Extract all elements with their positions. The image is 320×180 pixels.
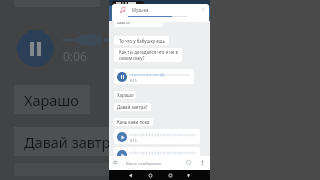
other: Play voice message xyxy=(117,150,127,160)
staticText: Музыка xyxy=(132,7,149,13)
button[interactable]: Как ты догадался что я не в своем свку? xyxy=(114,48,182,62)
staticText: Кань кави пока xyxy=(117,119,150,125)
button[interactable]: Emoji xyxy=(186,160,191,165)
button[interactable]: Кань кави пока xyxy=(114,118,153,126)
staticText: Как ты догадался что я не в своем свку? xyxy=(119,49,178,61)
button[interactable]: Pause voice message xyxy=(114,69,194,84)
button[interactable]: Музыка xyxy=(112,4,209,22)
staticText: Харашо xyxy=(117,92,134,98)
button[interactable]: То что у бабушку ешь xyxy=(114,36,169,45)
staticText: 0:06 xyxy=(63,48,87,64)
button[interactable]: Play voice message xyxy=(114,147,200,162)
staticText: 0:15 xyxy=(130,78,137,83)
staticText: свого? xyxy=(117,19,131,25)
button[interactable]: Recents xyxy=(168,173,173,178)
other: Pause voice message xyxy=(117,72,127,82)
button[interactable]: Attach xyxy=(113,160,118,165)
button[interactable]: Back xyxy=(128,173,133,178)
staticText: Давай завтра xyxy=(24,132,109,152)
button[interactable]: Давай завтра xyxy=(14,127,109,156)
staticText: Харашо xyxy=(24,90,79,110)
staticText: Ваше сообщение xyxy=(126,161,162,167)
staticText: 0:15 xyxy=(130,138,137,143)
button[interactable]: Pause xyxy=(17,30,54,67)
button[interactable]: свого? xyxy=(114,15,163,27)
button[interactable]: Давай завтра? xyxy=(114,103,151,111)
staticText: Давай завтра? xyxy=(117,104,148,110)
button[interactable]: Screen record xyxy=(186,173,191,178)
button[interactable]: Dismiss xyxy=(202,8,205,11)
other: Play voice message xyxy=(117,132,127,142)
button[interactable]: Voice message xyxy=(200,160,205,165)
button[interactable]: Play voice message xyxy=(114,129,200,144)
button[interactable]: Харашо xyxy=(114,91,136,99)
staticText: То что у бабушку ешь xyxy=(119,38,165,44)
button[interactable]: Home xyxy=(148,173,153,178)
button[interactable]: Харашо xyxy=(14,85,90,114)
